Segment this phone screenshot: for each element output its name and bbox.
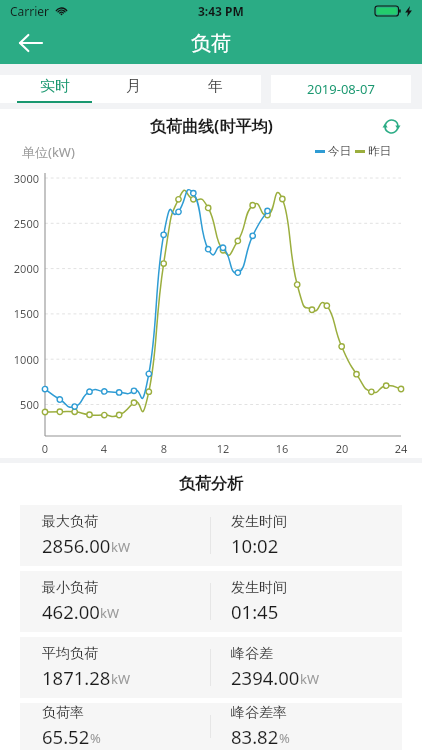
staticText: 2856.00 [42, 533, 111, 558]
staticText: 2394.00 [231, 665, 300, 690]
staticText: 单位(kW) [22, 143, 75, 161]
staticText: 今日 [328, 144, 351, 158]
staticText: 500 [5, 397, 39, 412]
staticText: 实时 [40, 77, 70, 96]
staticText: 3:43 PM [198, 3, 244, 19]
button[interactable]: 2019-08-07 [271, 75, 411, 103]
staticText: 负荷曲线(时平均) [150, 115, 273, 137]
staticText: 峰谷差 [231, 645, 273, 663]
button[interactable]: Refresh [377, 112, 405, 140]
staticText: 10:02 [231, 533, 279, 558]
staticText: 4 [92, 441, 116, 456]
staticText: kW [300, 670, 320, 688]
staticText: 年 [208, 77, 223, 96]
button[interactable]: Back [11, 23, 51, 63]
staticText: Carrier [10, 3, 50, 19]
staticText: 平均负荷 [42, 645, 98, 663]
staticText: 发生时间 [231, 513, 287, 531]
staticText: 01:45 [231, 599, 279, 624]
staticText: 16 [270, 441, 294, 456]
staticText: 1000 [5, 352, 39, 367]
staticText: % [279, 729, 290, 747]
button[interactable]: 实时 [17, 75, 92, 103]
staticText: 2500 [5, 216, 39, 231]
staticText: 负荷率 [42, 704, 84, 722]
button[interactable]: 年 [174, 75, 256, 103]
staticText: 峰谷差率 [231, 704, 287, 722]
staticText: 1871.28 [42, 665, 111, 690]
staticText: 20 [330, 441, 354, 456]
staticText: kW [111, 538, 131, 556]
staticText: 24 [389, 441, 413, 456]
staticText: 12 [211, 441, 235, 456]
staticText: 3000 [5, 171, 39, 186]
staticText: 8 [152, 441, 176, 456]
staticText: 发生时间 [231, 579, 287, 597]
button[interactable]: 月 [92, 75, 174, 103]
staticText: 0 [33, 441, 57, 456]
staticText: kW [111, 670, 131, 688]
staticText: 2019-08-07 [307, 80, 375, 98]
staticText: kW [100, 604, 120, 622]
staticText: 2000 [5, 261, 39, 276]
staticText: 1500 [5, 306, 39, 321]
staticText: 月 [126, 77, 141, 96]
staticText: 462.00 [42, 599, 100, 624]
staticText: 负荷分析 [179, 474, 243, 494]
staticText: 最大负荷 [42, 513, 98, 531]
staticText: 83.82 [231, 724, 279, 749]
staticText: 最小负荷 [42, 579, 98, 597]
staticText: % [90, 729, 101, 747]
staticText: 昨日 [368, 144, 391, 158]
staticText: 65.52 [42, 724, 90, 749]
staticText: 负荷 [191, 31, 231, 56]
